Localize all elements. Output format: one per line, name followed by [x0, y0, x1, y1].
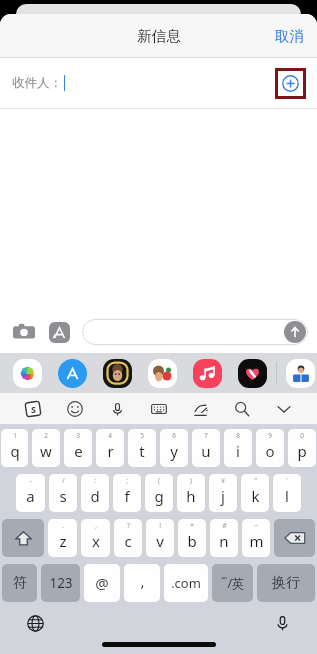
- staticText: 新信息: [137, 27, 181, 45]
- button[interactable]: Delete: [274, 519, 315, 557]
- staticText: 8: [236, 431, 240, 440]
- staticText: a: [26, 486, 35, 506]
- button[interactable]: x: [81, 519, 110, 557]
- button[interactable]: Collapse: [269, 394, 299, 424]
- button[interactable]: b: [178, 519, 206, 557]
- button[interactable]: w: [32, 429, 60, 467]
- staticText: z: [59, 531, 67, 551]
- staticText: 5: [140, 431, 144, 440]
- button[interactable]: m: [242, 519, 270, 557]
- button[interactable]: App: [102, 358, 133, 389]
- staticText: r: [107, 441, 114, 461]
- staticText: q: [10, 441, 20, 461]
- button[interactable]: 取消: [262, 19, 317, 53]
- button[interactable]: App Store: [44, 317, 74, 347]
- staticText: p: [297, 441, 307, 461]
- staticText: 换行: [272, 574, 300, 592]
- staticText: @: [95, 573, 109, 593]
- staticText: “”: [221, 575, 227, 586]
- button[interactable]: App: [285, 358, 316, 389]
- button[interactable]: Keyboard: [144, 394, 174, 424]
- staticText: 9: [268, 431, 272, 440]
- button[interactable]: App: [237, 358, 268, 389]
- staticText: d: [90, 486, 100, 506]
- staticText: 0: [300, 431, 304, 440]
- button[interactable]: 123: [41, 564, 80, 602]
- button[interactable]: k: [241, 474, 269, 512]
- staticText: e: [74, 441, 83, 461]
- staticText: 取消: [275, 27, 304, 45]
- button[interactable]: v: [146, 519, 174, 557]
- staticText: t: [139, 441, 145, 461]
- button[interactable]: z: [48, 519, 77, 557]
- staticText: :: [94, 476, 96, 485]
- button[interactable]: Dictation: [269, 610, 295, 636]
- button[interactable]: q: [1, 429, 28, 467]
- staticText: ": [254, 476, 257, 485]
- staticText: S: [31, 403, 36, 415]
- button[interactable]: l: [273, 474, 301, 512]
- staticText: l: [285, 486, 289, 506]
- button[interactable]: App: [192, 358, 223, 389]
- staticText: j: [221, 486, 225, 506]
- button[interactable]: i: [224, 429, 252, 467]
- button[interactable]: f: [113, 474, 141, 512]
- staticText: 收件人：: [12, 75, 62, 91]
- staticText: ;: [126, 476, 128, 485]
- button[interactable]: g: [145, 474, 173, 512]
- button[interactable]: App Store: [57, 358, 88, 389]
- button[interactable]: Voice: [102, 394, 132, 424]
- button[interactable]: 符: [2, 564, 37, 602]
- staticText: 123: [49, 574, 73, 592]
- staticText: 6: [172, 431, 176, 440]
- button[interactable]: j: [209, 474, 237, 512]
- staticText: x: [92, 531, 100, 551]
- button[interactable]: Shift: [2, 519, 44, 557]
- button[interactable]: @: [84, 564, 120, 602]
- button[interactable]: r: [96, 429, 124, 467]
- staticText: m: [249, 531, 264, 551]
- button[interactable]: t: [128, 429, 156, 467]
- button[interactable]: 中英切换: [212, 564, 253, 602]
- staticText: .: [62, 521, 64, 530]
- staticText: ?: [127, 521, 130, 530]
- button[interactable]: s: [49, 474, 77, 512]
- button[interactable]: n: [210, 519, 238, 557]
- staticText: v: [156, 531, 164, 551]
- staticText: -: [29, 476, 32, 485]
- staticText: u: [201, 441, 211, 461]
- button[interactable]: App: [147, 358, 178, 389]
- button[interactable]: Search: [227, 394, 257, 424]
- button[interactable]: d: [81, 474, 109, 512]
- button[interactable]: u: [192, 429, 220, 467]
- button[interactable]: y: [160, 429, 188, 467]
- staticText: w: [40, 441, 52, 461]
- button[interactable]: ,: [124, 564, 160, 602]
- staticText: i: [236, 441, 240, 461]
- staticText: ,: [95, 521, 97, 530]
- button[interactable]: p: [288, 429, 316, 467]
- staticText: h: [186, 486, 196, 506]
- staticText: o: [265, 441, 275, 461]
- button[interactable]: Sogou: [18, 394, 48, 424]
- staticText: !: [159, 521, 161, 530]
- button[interactable]: App: [12, 358, 43, 389]
- button[interactable]: Language: [22, 610, 48, 636]
- staticText: /: [62, 476, 65, 485]
- button[interactable]: Emoji: [60, 394, 90, 424]
- staticText: .com: [171, 574, 201, 592]
- button[interactable]: c: [114, 519, 142, 557]
- staticText: s: [59, 486, 67, 506]
- button[interactable]: a: [16, 474, 45, 512]
- button[interactable]: [82, 319, 308, 345]
- button[interactable]: 换行: [257, 564, 315, 602]
- button[interactable]: Handwriting: [185, 394, 215, 424]
- staticText: ¥: [221, 476, 225, 485]
- button[interactable]: h: [177, 474, 205, 512]
- button[interactable]: Add contact: [275, 68, 306, 99]
- button[interactable]: o: [256, 429, 284, 467]
- button[interactable]: e: [64, 429, 92, 467]
- button[interactable]: .com: [164, 564, 208, 602]
- button[interactable]: Camera: [9, 317, 39, 347]
- staticText: 3: [76, 431, 80, 440]
